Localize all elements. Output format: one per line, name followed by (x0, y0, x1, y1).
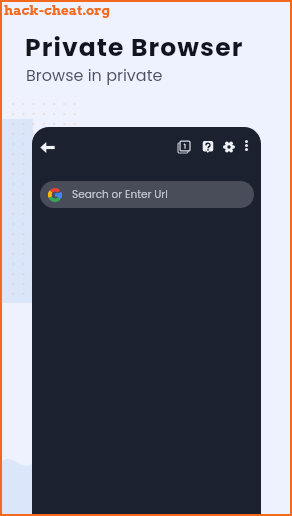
button[interactable]: Back (35, 135, 59, 159)
staticText: hack-cheat.org (4, 2, 110, 18)
button[interactable]: Search or Enter Url (40, 181, 254, 208)
button[interactable]: Tabs (173, 136, 195, 158)
button[interactable]: Help (197, 136, 219, 158)
staticText: Browse in private (26, 64, 163, 86)
staticText: Private Browser (25, 30, 244, 65)
staticText: Search or Enter Url (72, 187, 168, 202)
button[interactable]: Settings (218, 136, 240, 158)
button[interactable]: More options (237, 136, 255, 154)
